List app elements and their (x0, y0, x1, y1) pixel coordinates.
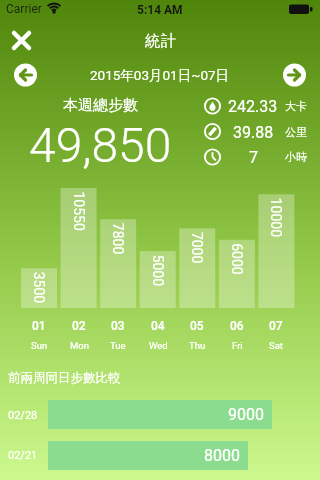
staticText: 04 (151, 319, 165, 333)
button[interactable] (13, 63, 38, 87)
staticText: 7 (249, 148, 258, 167)
staticText: 小時 (285, 150, 307, 164)
staticText: 2015年03月01日~07日 (90, 67, 230, 84)
button[interactable] (282, 63, 307, 87)
staticText: Wed (149, 340, 168, 351)
staticText: 02/21 (8, 449, 38, 462)
staticText: 05 (190, 319, 204, 333)
staticText: Tue (110, 340, 126, 351)
staticText: 本週總步數 (63, 96, 138, 115)
staticText: 8000 (204, 446, 240, 465)
button[interactable]: 8000 (48, 441, 248, 470)
staticText: 02 (72, 319, 86, 333)
staticText: 03 (111, 319, 125, 333)
button[interactable] (8, 28, 36, 54)
staticText: Thu (189, 340, 206, 351)
staticText: 大卡 (285, 99, 307, 113)
staticText: 07 (269, 319, 283, 333)
staticText: Sat (269, 340, 283, 351)
staticText: 242.33 (228, 97, 278, 116)
staticText: 5:14 AM (137, 3, 183, 17)
staticText: 前兩周同日步數比較 (8, 370, 121, 386)
staticText: 49,850 (29, 117, 172, 173)
staticText: 01 (32, 319, 46, 333)
button[interactable]: 9000 (48, 400, 272, 429)
staticText: 39.88 (233, 123, 274, 142)
staticText: 06 (230, 319, 244, 333)
staticText: 公里 (285, 125, 307, 139)
staticText: 02/28 (8, 409, 38, 422)
staticText: Carrier (6, 2, 42, 16)
staticText: 統計 (145, 31, 176, 51)
staticText: Mon (70, 340, 89, 351)
staticText: 9000 (228, 405, 264, 424)
staticText: Fri (232, 340, 243, 351)
staticText: Sun (31, 340, 48, 351)
